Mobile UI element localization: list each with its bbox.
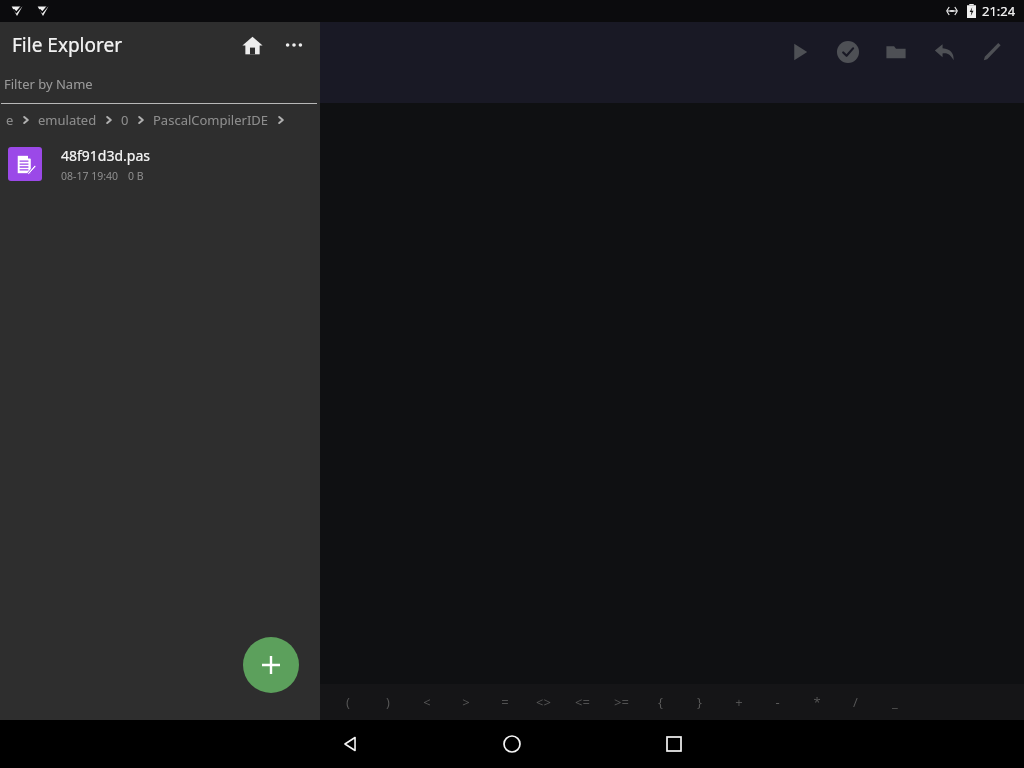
staticText: ( [346,693,350,711]
button[interactable]: _ [875,684,914,720]
button[interactable]: <> [524,684,563,720]
button[interactable]: <= [563,684,602,720]
button[interactable]: e [0,104,320,136]
staticText: <= [575,693,590,711]
button[interactable]: - [758,684,797,720]
button[interactable]: * [797,684,836,720]
staticText: 0 B [128,169,144,183]
button[interactable]: Open folder [872,28,920,76]
button[interactable]: Check [824,28,872,76]
button[interactable]: emulated [38,111,97,129]
button[interactable]: / [836,684,875,720]
staticText: Filter by Name [4,75,93,93]
button[interactable]: Back [326,720,374,768]
staticText: _ [892,693,898,711]
button[interactable]: Recent apps [650,720,698,768]
button[interactable]: ) [368,684,407,720]
button[interactable]: > [446,684,485,720]
staticText: + [735,693,743,711]
button[interactable]: < [407,684,446,720]
button[interactable]: Home [232,25,272,65]
staticText: >= [614,693,629,711]
staticText: * [813,693,821,711]
button[interactable]: Run [776,28,824,76]
staticText: 48f91d3d.pas [61,146,150,165]
button[interactable]: >= [602,684,641,720]
button[interactable]: More options [274,25,314,65]
staticText: <> [536,693,551,711]
staticText: } [697,693,702,711]
button[interactable]: 0 [121,111,129,129]
button[interactable]: } [680,684,719,720]
staticText: 08-17 19:40 [61,169,118,183]
staticText: ) [386,693,390,711]
button[interactable]: = [485,684,524,720]
button[interactable]: + [719,684,758,720]
button[interactable]: 48f91d3d.pas [0,136,320,192]
staticText: 21:24 [982,2,1016,20]
button[interactable]: { [641,684,680,720]
button[interactable]: Edit [968,28,1016,76]
staticText: - [775,693,780,711]
button[interactable]: Filter by Name [0,67,320,104]
button[interactable]: PascalCompilerIDE [153,111,269,129]
staticText: < [423,693,431,711]
button[interactable]: Home [488,720,536,768]
staticText: = [501,693,509,711]
staticText: > [462,693,470,711]
staticText: { [658,693,663,711]
button[interactable]: Add [243,637,299,693]
button[interactable]: e [6,111,14,129]
button[interactable]: ( [328,684,368,720]
button[interactable]: Undo [920,28,968,76]
staticText: / [853,693,858,711]
staticText: File Explorer [12,32,123,58]
